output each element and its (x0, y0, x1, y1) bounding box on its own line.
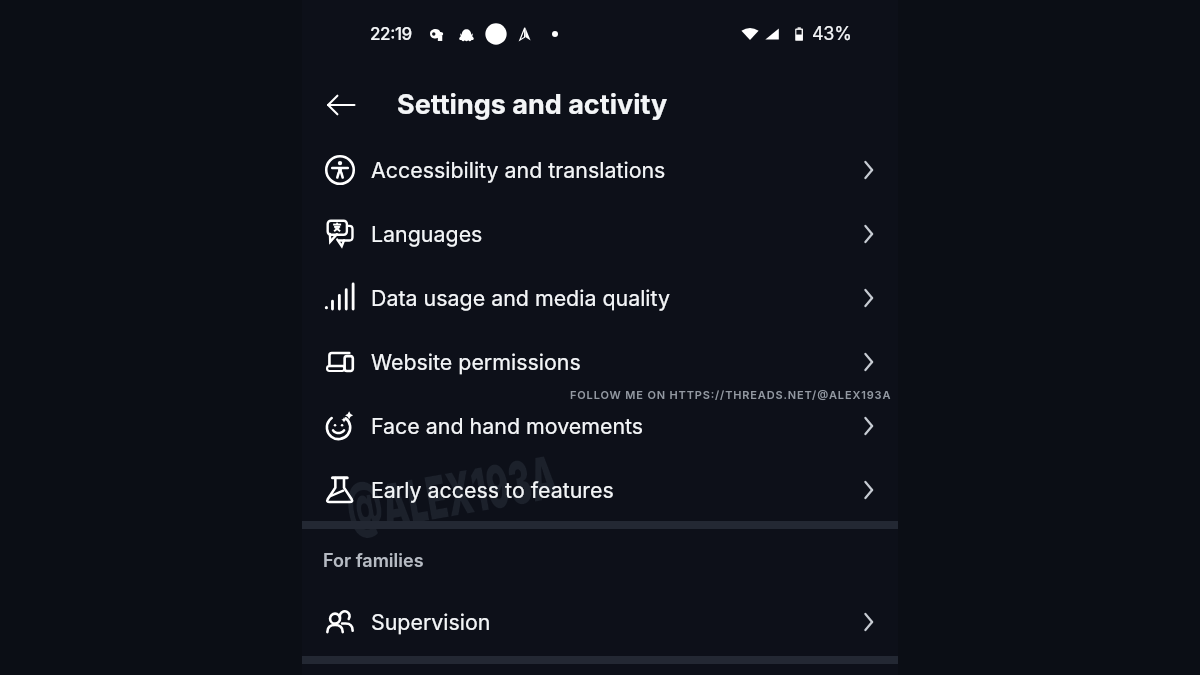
button[interactable]: Back (317, 81, 365, 129)
button[interactable]: Languages (302, 202, 898, 266)
staticText: @ALEX193A (342, 441, 563, 548)
button[interactable]: Supervision (302, 590, 898, 654)
staticText: FOLLOW ME ON HTTPS://THREADS.NET/@ALEX19… (570, 388, 892, 401)
staticText: For families (323, 550, 424, 572)
staticText: 22:19 (370, 24, 412, 45)
button[interactable]: Face and hand movements (302, 394, 898, 458)
button[interactable]: Website permissions (302, 330, 898, 394)
staticText: Face and hand movements (371, 413, 644, 439)
staticText: Website permissions (371, 349, 581, 375)
staticText: 43% (812, 23, 852, 45)
staticText: Supervision (371, 609, 491, 635)
staticText: Languages (371, 221, 483, 247)
button[interactable]: Data usage and media quality (302, 266, 898, 330)
staticText: Data usage and media quality (371, 285, 670, 311)
button[interactable]: Early access to features (302, 458, 898, 522)
staticText: Accessibility and translations (371, 157, 666, 183)
button[interactable]: Accessibility and translations (302, 138, 898, 202)
staticText: Early access to features (371, 477, 614, 503)
staticText: Settings and activity (397, 88, 668, 121)
